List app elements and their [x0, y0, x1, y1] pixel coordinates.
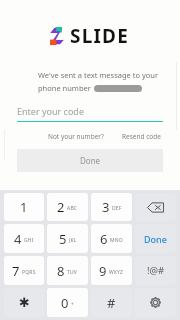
button[interactable]: 4	[4, 224, 44, 253]
staticText: Resend code	[122, 132, 161, 141]
staticText: 9	[99, 262, 107, 280]
staticText: 7	[12, 262, 20, 280]
staticText: Done	[144, 233, 167, 245]
staticText: Not your number?	[48, 132, 104, 141]
button[interactable]: Backspace	[135, 193, 176, 221]
button[interactable]: 6	[91, 224, 132, 253]
staticText: DEF	[112, 205, 122, 212]
staticText: Done	[80, 155, 101, 166]
button[interactable]: !@#	[135, 256, 176, 285]
button[interactable]: Keyboard settings	[135, 288, 176, 317]
staticText: MNO	[110, 237, 123, 244]
staticText: 6	[100, 230, 108, 248]
staticText: TUV	[67, 269, 78, 276]
staticText: ABC	[67, 205, 78, 212]
button[interactable]: 8	[47, 256, 88, 285]
button[interactable]: 1	[4, 193, 44, 221]
button[interactable]: Not your number?	[46, 130, 106, 143]
button[interactable]: 7	[4, 256, 44, 285]
button[interactable]: ✱	[4, 288, 44, 317]
staticText: SLIDE	[70, 23, 130, 49]
staticText: phone number	[38, 83, 91, 93]
staticText: 1	[20, 198, 28, 216]
button[interactable]: 3	[91, 193, 132, 221]
button[interactable]: Done	[17, 149, 163, 172]
staticText: We've sent a text message to your	[38, 70, 159, 80]
button[interactable]: Resend code	[120, 130, 163, 143]
staticText: !@#	[147, 264, 165, 277]
staticText: PQRS	[22, 269, 36, 276]
staticText: +	[71, 301, 75, 308]
staticText: 3	[102, 198, 110, 216]
button[interactable]: 0	[47, 288, 88, 317]
button[interactable]: Done	[135, 224, 176, 253]
staticText: WXYZ	[109, 269, 124, 276]
staticText: 8	[57, 262, 65, 280]
staticText: 2	[57, 198, 65, 216]
staticText: JKL	[69, 237, 77, 244]
button[interactable]: Enter your code	[17, 105, 163, 122]
button[interactable]: 2	[47, 193, 88, 221]
staticText: Enter your code	[17, 105, 84, 117]
staticText: 4	[14, 230, 22, 248]
staticText: 0	[61, 294, 69, 312]
staticText: 5	[59, 230, 67, 248]
button[interactable]: 9	[91, 256, 132, 285]
staticText: #	[107, 294, 116, 312]
button[interactable]: #	[91, 288, 132, 317]
staticText: GHI	[24, 237, 34, 244]
staticText: ✱	[19, 295, 30, 310]
button[interactable]: 5	[47, 224, 88, 253]
